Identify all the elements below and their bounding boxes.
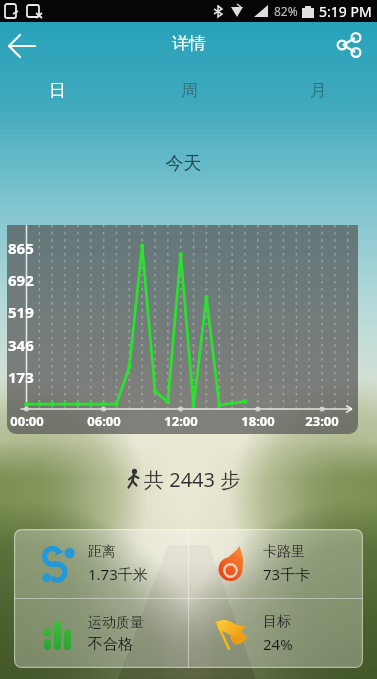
staticText: 详情: [172, 33, 206, 54]
staticText: 692: [8, 270, 34, 290]
staticText: 目标: [263, 613, 291, 631]
staticText: 月: [310, 80, 327, 101]
staticText: 距离: [88, 543, 116, 561]
staticText: 73千卡: [263, 564, 311, 584]
staticText: 519: [8, 302, 34, 322]
staticText: 12:00: [161, 412, 201, 430]
staticText: 173: [8, 367, 34, 387]
staticText: 1.73千米: [88, 564, 148, 584]
button[interactable]: [326, 24, 372, 66]
staticText: 不合格: [88, 635, 133, 654]
button[interactable]: 运动质量: [14, 599, 188, 668]
staticText: 今天: [0, 152, 372, 175]
staticText: 24%: [263, 634, 293, 654]
button[interactable]: [0, 25, 44, 67]
staticText: 346: [8, 335, 34, 355]
staticText: 06:00: [84, 412, 124, 430]
staticText: 日: [49, 80, 66, 101]
staticText: 23:00: [302, 412, 342, 430]
staticText: 18:00: [238, 412, 278, 430]
staticText: 卡路里: [263, 543, 305, 561]
button[interactable]: 日: [27, 73, 87, 107]
staticText: 运动质量: [88, 614, 144, 632]
staticText: 5:19 PM: [319, 2, 372, 21]
button[interactable]: 周: [159, 73, 219, 107]
staticText: 周: [181, 80, 198, 101]
staticText: 共 2443 步: [144, 466, 241, 492]
button[interactable]: 距离: [14, 529, 188, 598]
button[interactable]: 目标: [189, 599, 363, 668]
button[interactable]: 月: [288, 73, 348, 107]
staticText: 82%: [274, 3, 298, 19]
staticText: 00:00: [7, 412, 47, 430]
staticText: 865: [8, 238, 34, 258]
button[interactable]: 卡路里: [189, 529, 363, 598]
